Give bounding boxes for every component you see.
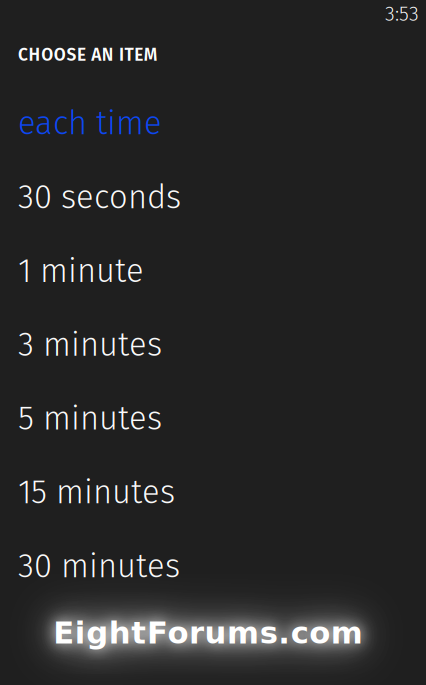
staticText: 30 seconds — [18, 178, 181, 217]
button[interactable]: 3 minutes — [0, 308, 426, 382]
staticText: EightForums.com — [53, 615, 363, 651]
button[interactable]: 30 minutes — [0, 529, 426, 603]
button[interactable]: 30 seconds — [0, 160, 426, 234]
staticText: 5 minutes — [18, 399, 162, 438]
button[interactable]: each time — [0, 86, 426, 160]
staticText: 3 minutes — [18, 325, 162, 364]
staticText: 30 minutes — [18, 547, 180, 586]
staticText: 3:53 — [385, 2, 419, 26]
staticText: each time — [18, 104, 162, 143]
staticText: 15 minutes — [18, 473, 175, 512]
staticText: CHOOSE AN ITEM — [18, 45, 158, 65]
button[interactable]: 15 minutes — [0, 455, 426, 529]
button[interactable]: 1 minute — [0, 234, 426, 308]
button[interactable]: 5 minutes — [0, 382, 426, 455]
staticText: 1 minute — [18, 251, 144, 291]
